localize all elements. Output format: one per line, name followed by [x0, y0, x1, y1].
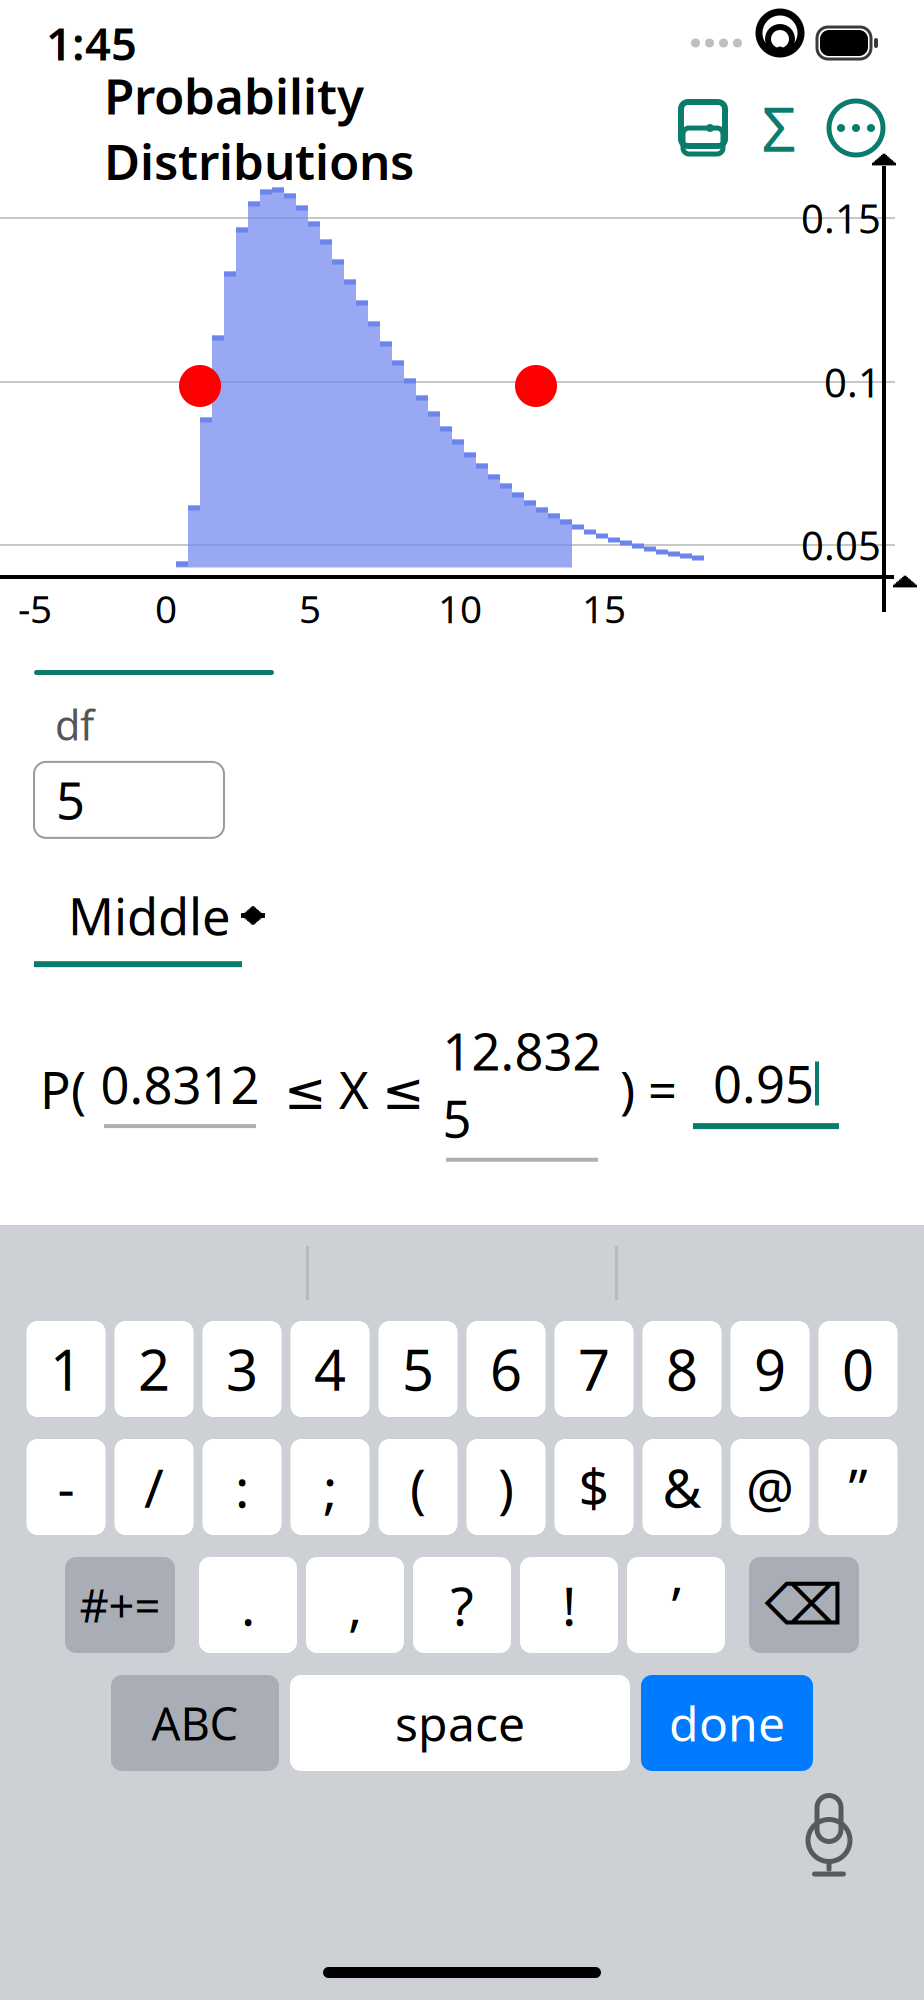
staticText: 6	[490, 1332, 522, 1406]
button[interactable]: Statistics	[742, 96, 816, 160]
staticText: 15	[582, 583, 626, 634]
staticText: 2	[138, 1332, 170, 1406]
button[interactable]: done	[641, 1675, 813, 1771]
staticText: 0	[842, 1332, 874, 1406]
button[interactable]: 9	[730, 1321, 809, 1417]
staticText: 7	[578, 1332, 610, 1406]
staticText: 0.8312	[100, 1051, 259, 1118]
staticText: Σ	[761, 87, 796, 169]
staticText: 0	[155, 583, 177, 634]
staticText: 0.95	[713, 1050, 814, 1117]
staticText: ≤ X ≤	[284, 1056, 424, 1123]
button[interactable]: 8	[642, 1321, 721, 1417]
button[interactable]: 12.8325	[424, 1017, 602, 1162]
button[interactable]: 3	[202, 1321, 281, 1417]
staticText: #+=	[79, 1575, 160, 1635]
button[interactable]: &	[642, 1439, 721, 1535]
button[interactable]: /	[114, 1439, 193, 1535]
staticText: ’	[671, 1570, 680, 1640]
staticText: ”	[848, 1452, 867, 1522]
button[interactable]: ”	[818, 1439, 897, 1535]
staticText: 10	[438, 583, 482, 634]
staticText: -5	[18, 583, 52, 634]
staticText: Probability Distributions	[104, 62, 414, 193]
staticText: 0.1	[824, 355, 881, 408]
button[interactable]: space	[290, 1675, 630, 1771]
staticText: ⌫	[764, 1573, 843, 1637]
staticText: !	[562, 1570, 576, 1640]
staticText: 4	[314, 1332, 346, 1406]
staticText: .	[241, 1570, 255, 1640]
staticText: ?	[450, 1570, 473, 1640]
button[interactable]: 5	[34, 762, 224, 838]
staticText: 1	[50, 1332, 82, 1406]
staticText: -	[57, 1452, 74, 1522]
button[interactable]: 5	[378, 1321, 457, 1417]
staticText: @	[746, 1452, 794, 1522]
staticText: 5	[299, 583, 321, 634]
button[interactable]: (	[378, 1439, 457, 1535]
button[interactable]: Dictate	[794, 1797, 864, 1875]
button[interactable]: -	[26, 1439, 105, 1535]
staticText: ) =	[620, 1056, 677, 1123]
button[interactable]: More options	[816, 96, 896, 160]
button[interactable]: ?	[413, 1557, 511, 1653]
staticText: space	[395, 1691, 525, 1755]
button[interactable]: ABC	[111, 1675, 279, 1771]
button[interactable]: 2	[114, 1321, 193, 1417]
button[interactable]: 0.8312	[86, 1051, 260, 1128]
staticText: 9	[754, 1332, 786, 1406]
button[interactable]: !	[520, 1557, 618, 1653]
button[interactable]: 6	[466, 1321, 545, 1417]
button[interactable]: :	[202, 1439, 281, 1535]
button[interactable]: )	[466, 1439, 545, 1535]
button[interactable]: 7	[554, 1321, 633, 1417]
staticText: ,	[348, 1570, 362, 1640]
staticText: $	[578, 1452, 609, 1522]
staticText: done	[669, 1691, 785, 1755]
staticText: :	[235, 1452, 249, 1522]
staticText: df	[55, 697, 94, 752]
staticText: ABC	[151, 1693, 238, 1753]
staticText: 1:45	[46, 13, 137, 73]
staticText: 0.05	[801, 518, 881, 571]
button[interactable]: ;	[290, 1439, 369, 1535]
button[interactable]: 0	[818, 1321, 897, 1417]
staticText: )	[498, 1452, 514, 1522]
button[interactable]: #+=	[65, 1557, 175, 1653]
button[interactable]: Delete	[749, 1557, 859, 1653]
staticText: 8	[666, 1332, 698, 1406]
button[interactable]: 1	[26, 1321, 105, 1417]
button[interactable]: 0.95	[677, 1050, 841, 1129]
staticText: 5	[56, 766, 85, 833]
staticText: 5	[402, 1332, 434, 1406]
button[interactable]: .	[199, 1557, 297, 1653]
staticText: 0.15	[801, 191, 881, 244]
staticText: /	[144, 1452, 164, 1522]
button[interactable]: $	[554, 1439, 633, 1535]
staticText: ;	[323, 1452, 337, 1522]
button[interactable]: @	[730, 1439, 809, 1535]
staticText: (	[410, 1452, 426, 1522]
button[interactable]: Learn	[664, 96, 742, 160]
button[interactable]: ’	[627, 1557, 725, 1653]
button[interactable]: Middle	[0, 838, 263, 961]
button[interactable]: ,	[306, 1557, 404, 1653]
staticText: 12.8325	[442, 1017, 601, 1152]
staticText: 3	[226, 1332, 258, 1406]
staticText: &	[662, 1452, 701, 1522]
button[interactable]: 4	[290, 1321, 369, 1417]
staticText: P(	[40, 1056, 86, 1123]
staticText: Middle	[68, 882, 231, 949]
